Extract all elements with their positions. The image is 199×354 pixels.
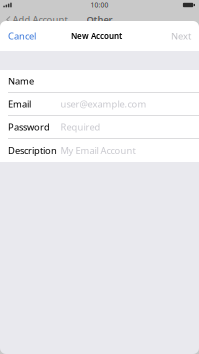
- button[interactable]: Description: [0, 139, 199, 162]
- staticText: Other: [86, 13, 112, 26]
- staticText: Required: [60, 121, 100, 133]
- button[interactable]: Password: [0, 116, 199, 138]
- staticText: 10:00: [90, 1, 108, 9]
- staticText: My Email Account: [60, 144, 135, 157]
- staticText: Cancel: [8, 30, 36, 42]
- button[interactable]: Name: [0, 70, 199, 92]
- staticText: user@example.com: [60, 98, 146, 110]
- button[interactable]: Cancel: [0, 21, 42, 51]
- staticText: New Account: [71, 31, 122, 41]
- staticText: Email: [8, 98, 31, 110]
- staticText: Password: [8, 121, 50, 133]
- button[interactable]: Email: [0, 93, 199, 115]
- staticText: Description: [8, 144, 57, 157]
- staticText: Add Account: [12, 13, 67, 26]
- button[interactable]: Next: [165, 21, 199, 51]
- staticText: Next: [171, 30, 191, 42]
- staticText: Name: [8, 75, 34, 87]
